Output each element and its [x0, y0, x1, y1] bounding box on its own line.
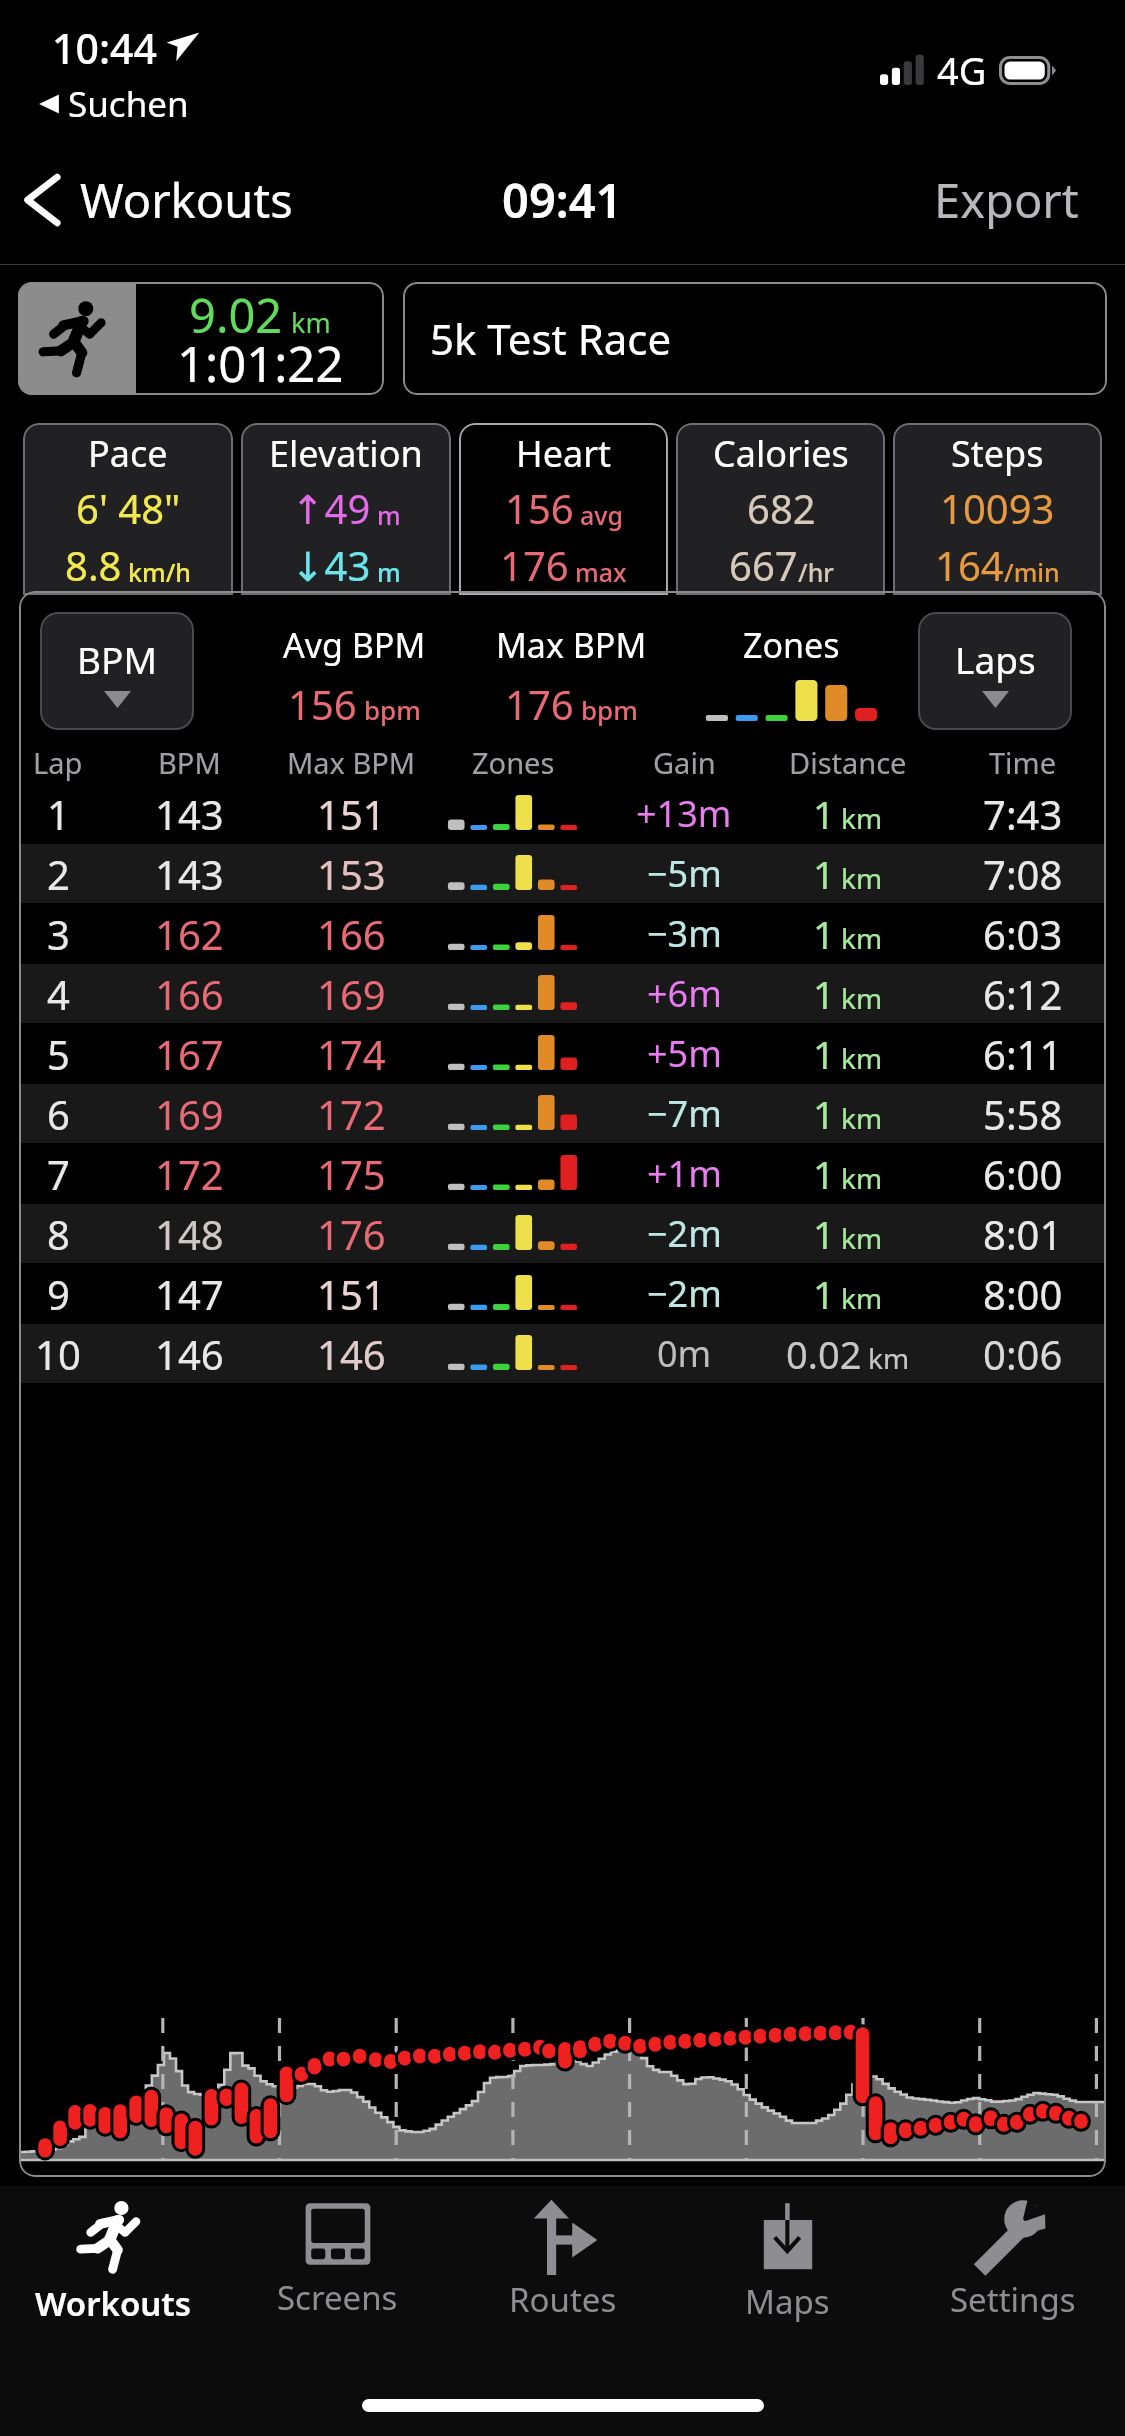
staticText: −2m [647, 1209, 722, 1258]
button[interactable]: Workouts [0, 2186, 225, 2336]
staticText: 162 [155, 907, 224, 961]
staticText: 8 [47, 1207, 70, 1261]
staticText: Export [934, 168, 1079, 232]
button[interactable] [19, 1264, 1106, 1323]
button[interactable]: 5k Test Race [403, 282, 1107, 395]
staticText: max [575, 555, 627, 589]
staticText: Max BPM [287, 743, 416, 782]
staticText: Screens [277, 2275, 398, 2320]
staticText: 667 [729, 538, 798, 592]
staticText: /min [1004, 555, 1060, 589]
button[interactable]: Heart [459, 423, 668, 595]
staticText: 166 [155, 967, 224, 1021]
staticText: Suchen [68, 80, 189, 128]
staticText: 6:12 [983, 967, 1063, 1021]
staticText: km [841, 799, 883, 837]
staticText: 0:06 [983, 1327, 1063, 1381]
staticText: BPM [77, 634, 157, 684]
button[interactable] [19, 1324, 1106, 1383]
staticText: km [841, 1099, 883, 1137]
button[interactable] [19, 1144, 1106, 1203]
staticText: km [841, 1039, 883, 1077]
button[interactable] [19, 1084, 1106, 1143]
staticText: 7:08 [983, 847, 1063, 901]
staticText: km [841, 919, 883, 957]
staticText: +6m [647, 969, 722, 1018]
button[interactable]: Elevation [241, 423, 451, 595]
staticText: 156 [288, 677, 357, 731]
staticText: 147 [155, 1267, 224, 1321]
staticText: Calories [713, 429, 849, 478]
staticText: km/h [128, 555, 191, 589]
staticText: −5m [647, 849, 722, 898]
staticText: 8.8 [65, 538, 122, 592]
staticText: 151 [317, 1267, 386, 1321]
staticText: BPM [158, 743, 221, 782]
staticText: 5 [47, 1027, 70, 1081]
button[interactable] [19, 964, 1106, 1023]
button[interactable]: Maps [675, 2186, 900, 2336]
staticText: Time [989, 743, 1057, 782]
staticText: 151 [317, 787, 386, 841]
staticText: 1 [813, 1088, 835, 1140]
staticText: ↑49 [291, 481, 371, 535]
staticText: 6:03 [983, 907, 1063, 961]
button[interactable]: Pace [23, 423, 233, 595]
button[interactable]: Workouts [22, 160, 293, 240]
staticText: Elevation [269, 429, 423, 478]
staticText: 10093 [940, 481, 1055, 535]
staticText: 5:58 [983, 1087, 1063, 1141]
other: Routes [523, 2195, 603, 2275]
staticText: 1 [813, 1268, 835, 1320]
staticText: 143 [155, 847, 224, 901]
staticText: −7m [647, 1089, 722, 1138]
staticText: 7 [47, 1147, 70, 1201]
staticText: ↓43 [291, 538, 371, 592]
staticText: 1 [47, 787, 70, 841]
staticText: km [841, 1159, 883, 1197]
staticText: 174 [317, 1027, 386, 1081]
button[interactable]: Settings [900, 2186, 1125, 2336]
button[interactable]: 9.02 [18, 282, 384, 395]
staticText: Distance [789, 743, 907, 782]
staticText: +5m [647, 1029, 722, 1078]
staticText: 8:00 [983, 1267, 1063, 1321]
button[interactable] [19, 1204, 1106, 1263]
staticText: 143 [155, 787, 224, 841]
staticText: 9 [47, 1267, 70, 1321]
staticText: 10 [35, 1327, 81, 1381]
staticText: 1 [813, 848, 835, 900]
button[interactable]: Laps [918, 612, 1072, 730]
staticText: km [291, 304, 331, 341]
other: Screens [299, 2195, 377, 2273]
button[interactable] [19, 1024, 1106, 1083]
staticText: 1 [813, 908, 835, 960]
button[interactable]: Screens [225, 2186, 450, 2336]
button[interactable]: Routes [450, 2186, 675, 2336]
staticText: 09:41 [502, 168, 623, 232]
button[interactable]: Export [934, 168, 1079, 232]
staticText: 176 [317, 1207, 386, 1261]
staticText: 9.02 [189, 283, 283, 347]
staticText: +13m [636, 789, 732, 838]
staticText: 4G [937, 44, 987, 96]
button[interactable]: Steps [893, 423, 1102, 595]
staticText: 169 [155, 1087, 224, 1141]
staticText: Gain [653, 743, 716, 782]
staticText: Heart [516, 429, 612, 478]
staticText: Maps [745, 2279, 830, 2324]
staticText: 166 [317, 907, 386, 961]
button[interactable] [19, 844, 1106, 903]
button[interactable]: BPM [40, 612, 194, 730]
staticText: Settings [950, 2277, 1076, 2322]
staticText: 172 [317, 1087, 386, 1141]
staticText: Routes [509, 2277, 617, 2322]
button[interactable] [19, 904, 1106, 963]
button[interactable] [19, 784, 1106, 843]
staticText: 148 [155, 1207, 224, 1261]
staticText: 2 [47, 847, 70, 901]
staticText: 176 [505, 677, 574, 731]
staticText: 1:01:22 [177, 330, 344, 395]
button[interactable]: Calories [676, 423, 885, 595]
staticText: Lap [33, 743, 83, 782]
